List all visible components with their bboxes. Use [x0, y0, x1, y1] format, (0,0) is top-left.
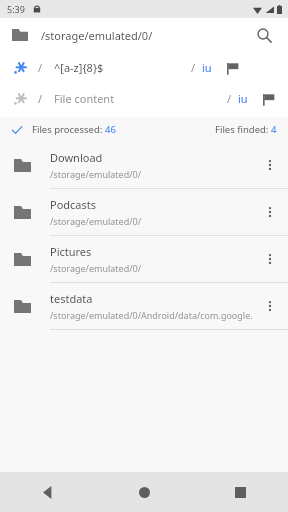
button[interactable]: / — [0, 52, 288, 83]
staticText: iu — [202, 60, 212, 75]
staticText: /storage/emulated/0/ — [50, 215, 142, 227]
staticText: /storage/emulated/0/ — [50, 168, 142, 180]
button[interactable]: Back — [0, 472, 96, 512]
staticText: / — [227, 91, 232, 106]
button[interactable]: More options — [258, 153, 282, 177]
button[interactable]: Search — [252, 23, 276, 47]
button[interactable]: More options — [258, 200, 282, 224]
staticText: / — [38, 60, 43, 75]
button[interactable]: Flag — [222, 58, 242, 78]
button[interactable]: Download — [0, 142, 288, 189]
button[interactable]: More options — [258, 247, 282, 271]
button[interactable]: Recent apps — [192, 472, 288, 512]
button[interactable]: Pictures — [0, 236, 288, 283]
staticText: File content (1MB max file size) — [54, 91, 140, 106]
staticText: Pictures — [50, 244, 92, 259]
button[interactable]: testdata — [0, 283, 288, 330]
button[interactable]: Home — [96, 472, 192, 512]
staticText: Podcasts — [50, 197, 97, 212]
staticText: /storage/emulated/0/ — [50, 262, 142, 274]
button[interactable]: /storage/emulated/0/ — [0, 18, 288, 52]
button[interactable]: / — [0, 83, 288, 114]
button[interactable]: More options — [258, 294, 282, 318]
staticText: /storage/emulated/0/ — [41, 28, 153, 43]
staticText: testdata — [50, 291, 93, 306]
staticText: iu — [238, 91, 248, 106]
staticText: /storage/emulated/0/Android/data/com.goo… — [50, 309, 253, 321]
button[interactable]: Podcasts — [0, 189, 288, 236]
staticText: / — [191, 60, 196, 75]
staticText: Files finded: — [215, 123, 271, 136]
staticText: Download — [50, 150, 103, 165]
staticText: ^[a-z]{8}$ — [54, 60, 104, 75]
staticText: / — [38, 91, 43, 106]
staticText: 5:39 — [7, 3, 25, 15]
staticText: 46 — [105, 123, 116, 136]
button[interactable]: Flag — [258, 89, 278, 109]
staticText: 4 — [271, 123, 277, 136]
staticText: Files processed: — [32, 123, 105, 136]
